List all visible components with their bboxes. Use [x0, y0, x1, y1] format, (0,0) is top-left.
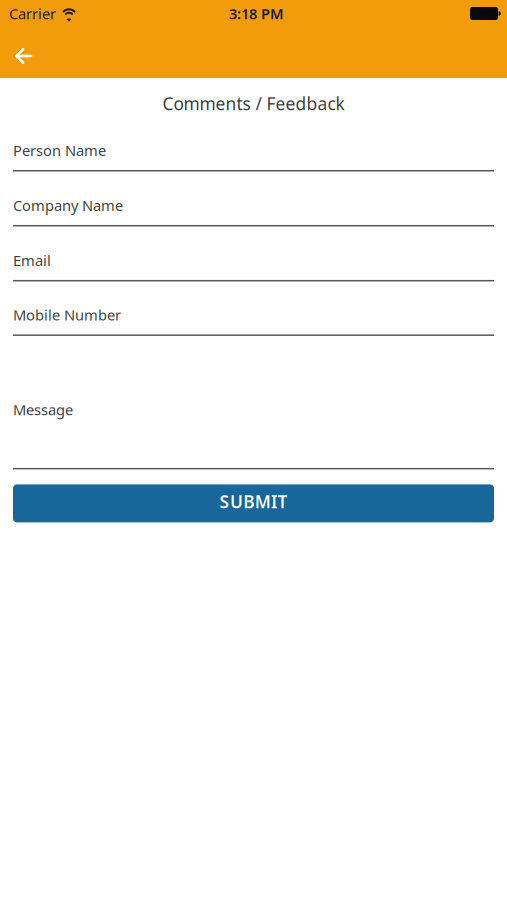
staticText: Email: [13, 250, 51, 270]
staticText: Mobile Number: [13, 305, 121, 324]
staticText: 3:18 PM: [229, 4, 284, 23]
button[interactable]: Back: [0, 27, 32, 64]
staticText: SUBMIT: [219, 490, 287, 513]
staticText: Carrier: [9, 4, 56, 23]
button[interactable]: Company Name: [13, 171, 494, 226]
staticText: Company Name: [13, 195, 123, 215]
button[interactable]: SUBMIT: [13, 484, 494, 522]
button[interactable]: Person Name: [13, 115, 494, 171]
button[interactable]: Mobile Number: [13, 281, 494, 336]
staticText: Person Name: [13, 140, 106, 160]
staticText: Comments / Feedback: [162, 92, 344, 115]
button[interactable]: Message: [13, 336, 494, 469]
button[interactable]: Email: [13, 226, 494, 281]
staticText: Message: [13, 400, 73, 419]
